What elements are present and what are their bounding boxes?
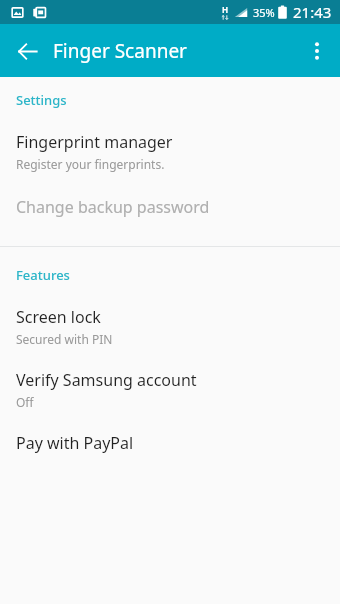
- button[interactable]: Screen lock: [0, 306, 340, 347]
- staticText: Fingerprint manager: [16, 131, 173, 153]
- button[interactable]: Verify Samsung account: [0, 369, 340, 410]
- button[interactable]: Fingerprint manager: [0, 131, 340, 172]
- staticText: Pay with PayPal: [16, 432, 134, 454]
- staticText: 21:43: [293, 2, 332, 22]
- button[interactable]: Back: [6, 30, 48, 72]
- staticText: Verify Samsung account: [16, 369, 197, 391]
- button[interactable]: Pay with PayPal: [0, 432, 340, 454]
- button[interactable]: More options: [296, 30, 338, 72]
- staticText: 35%: [253, 5, 275, 20]
- staticText: Change backup password: [16, 196, 210, 218]
- staticText: Settings: [16, 91, 67, 109]
- button[interactable]: Change backup password: [0, 196, 340, 218]
- staticText: Screen lock: [16, 306, 101, 328]
- staticText: Finger Scanner: [53, 38, 187, 64]
- staticText: Secured with PIN: [16, 331, 113, 347]
- staticText: Off: [16, 394, 34, 410]
- staticText: Register your fingerprints.: [16, 156, 165, 172]
- staticText: Features: [16, 266, 70, 284]
- staticText: H: [222, 4, 229, 15]
